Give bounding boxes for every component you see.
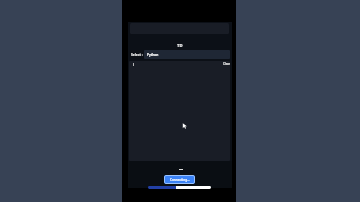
staticText: Clear — [223, 62, 230, 66]
staticText: Python — [147, 53, 159, 57]
button[interactable]: Python — [144, 50, 230, 59]
staticText: Connecting... — [170, 178, 190, 182]
button[interactable]: Clear — [223, 62, 230, 66]
button[interactable]: Connecting... — [164, 175, 195, 184]
staticText: TD — [177, 43, 183, 49]
staticText: Select : — [131, 52, 143, 56]
button[interactable]: TD — [128, 43, 232, 49]
